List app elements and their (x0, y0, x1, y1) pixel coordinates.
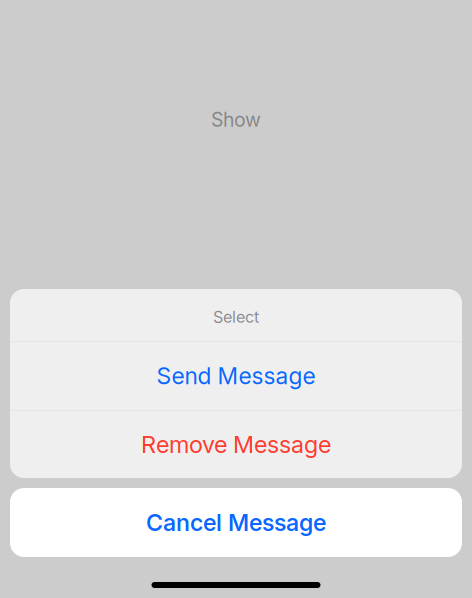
button[interactable]: Show (211, 108, 261, 132)
button[interactable]: Send Message (10, 342, 462, 410)
button[interactable]: Remove Message (10, 411, 462, 478)
staticText: Remove Message (141, 430, 331, 459)
staticText: Show (211, 108, 261, 132)
button[interactable]: Cancel Message (10, 488, 462, 557)
staticText: Select (213, 307, 259, 327)
staticText: Cancel Message (146, 508, 326, 537)
staticText: Send Message (156, 362, 315, 390)
